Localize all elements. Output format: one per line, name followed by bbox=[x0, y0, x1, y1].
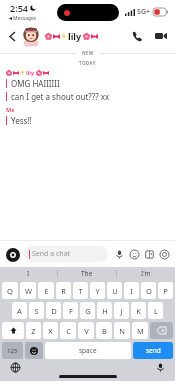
staticText: 123 bbox=[7, 347, 18, 355]
staticText: J bbox=[120, 306, 123, 316]
button[interactable]: Video call bbox=[152, 27, 170, 45]
staticText: Yess!! bbox=[11, 115, 32, 126]
staticText: A bbox=[17, 306, 22, 316]
button[interactable]: The bbox=[58, 267, 116, 280]
button[interactable]: Dictation bbox=[155, 362, 165, 372]
button[interactable]: Backspace bbox=[150, 322, 173, 339]
staticText: send bbox=[146, 346, 161, 355]
staticText: D bbox=[51, 306, 57, 316]
staticText: E bbox=[44, 286, 49, 296]
staticText: I'm bbox=[141, 269, 151, 278]
button[interactable]: Gallery bbox=[143, 248, 155, 260]
button[interactable]: Yess!! bbox=[0, 115, 175, 126]
button[interactable]: B bbox=[96, 322, 112, 339]
staticText: O bbox=[146, 286, 152, 296]
staticText: can I get a shout out??? xx bbox=[11, 91, 110, 102]
button[interactable]: send bbox=[133, 342, 173, 359]
staticText: S bbox=[34, 306, 39, 316]
button[interactable]: U bbox=[107, 282, 122, 299]
staticText: Y bbox=[95, 286, 100, 296]
staticText: P bbox=[163, 286, 168, 296]
staticText: F bbox=[69, 306, 73, 316]
staticText: X bbox=[48, 326, 53, 336]
staticText: OMG HAIIIIII bbox=[11, 78, 60, 89]
staticText: I bbox=[27, 269, 30, 278]
button[interactable]: W bbox=[20, 282, 36, 299]
button[interactable]: K bbox=[131, 302, 146, 319]
staticText: M bbox=[137, 326, 144, 336]
button[interactable]: V bbox=[78, 322, 94, 339]
staticText: I bbox=[130, 286, 133, 296]
button[interactable]: X bbox=[43, 322, 58, 339]
button[interactable]: N bbox=[114, 322, 130, 339]
staticText: space bbox=[79, 346, 97, 355]
button[interactable]: Voice note bbox=[113, 248, 125, 260]
button[interactable]: Send a chat bbox=[24, 246, 108, 262]
button[interactable]: Back bbox=[5, 25, 19, 47]
button[interactable]: 123 bbox=[2, 342, 23, 359]
button[interactable]: E bbox=[38, 282, 54, 299]
staticText: H bbox=[102, 306, 108, 316]
button[interactable]: Camera bbox=[5, 247, 20, 262]
button[interactable]: P bbox=[158, 282, 173, 299]
button[interactable]: J bbox=[114, 302, 129, 319]
staticText: T bbox=[78, 286, 83, 296]
staticText: G bbox=[85, 306, 91, 316]
button[interactable]: Change keyboard bbox=[10, 362, 20, 372]
button[interactable]: A bbox=[12, 302, 27, 319]
button[interactable]: Stickers bbox=[128, 248, 140, 260]
button[interactable]: T bbox=[73, 282, 88, 299]
button[interactable]: I bbox=[124, 282, 139, 299]
button[interactable]: can I get a shout out??? xx bbox=[0, 91, 175, 102]
button[interactable]: Profile bbox=[21, 26, 41, 46]
button[interactable]: O bbox=[141, 282, 156, 299]
staticText: Send a chat bbox=[32, 249, 71, 259]
staticText: L bbox=[154, 306, 158, 316]
staticText: lily bbox=[68, 30, 82, 42]
staticText: lily bbox=[26, 69, 35, 76]
button[interactable]: M bbox=[132, 322, 148, 339]
button[interactable]: Y bbox=[90, 282, 105, 299]
button[interactable]: S bbox=[29, 302, 44, 319]
button[interactable]: Q bbox=[2, 282, 18, 299]
staticText: Me bbox=[6, 106, 15, 113]
button[interactable]: Shift bbox=[2, 322, 24, 339]
staticText: W bbox=[25, 286, 32, 296]
staticText: NEW bbox=[82, 50, 94, 56]
button[interactable]: L bbox=[148, 302, 163, 319]
staticText: 5G+ bbox=[137, 7, 151, 17]
staticText: TODAY bbox=[79, 60, 96, 66]
button[interactable]: I bbox=[0, 267, 57, 280]
staticText: Q bbox=[7, 286, 13, 296]
button[interactable]: OMG HAIIIIII bbox=[0, 78, 175, 89]
staticText: B bbox=[102, 326, 107, 336]
staticText: V bbox=[84, 326, 89, 336]
button[interactable]: Voice call bbox=[128, 27, 146, 45]
button[interactable]: lily bbox=[45, 30, 128, 42]
button[interactable]: F bbox=[63, 302, 78, 319]
staticText: R bbox=[61, 286, 66, 296]
staticText: N bbox=[119, 326, 125, 336]
staticText: Messages bbox=[13, 15, 37, 22]
button[interactable]: Emoji bbox=[25, 342, 43, 359]
button[interactable]: H bbox=[97, 302, 112, 319]
button[interactable]: Snap Map bbox=[158, 248, 170, 260]
staticText: U bbox=[112, 286, 118, 296]
button[interactable]: C bbox=[60, 322, 76, 339]
staticText: K bbox=[136, 306, 141, 316]
button[interactable]: space bbox=[45, 342, 131, 359]
button[interactable]: Z bbox=[26, 322, 41, 339]
staticText: Z bbox=[31, 326, 36, 336]
staticText: 2:54 bbox=[10, 2, 28, 14]
button[interactable]: R bbox=[56, 282, 71, 299]
button[interactable]: G bbox=[80, 302, 95, 319]
staticText: C bbox=[66, 326, 71, 336]
button[interactable]: I'm bbox=[117, 267, 175, 280]
staticText: The bbox=[81, 269, 93, 278]
button[interactable]: D bbox=[46, 302, 61, 319]
